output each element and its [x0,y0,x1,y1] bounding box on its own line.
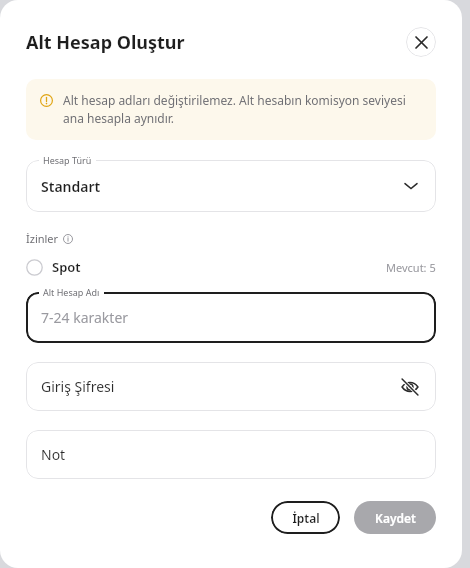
button[interactable]: Not [26,430,436,479]
button[interactable]: Spot [26,258,436,276]
staticText: İptal [292,510,320,526]
button[interactable]: Kaydet [354,501,436,534]
staticText: Giriş Şifresi [41,377,398,396]
button[interactable]: Kapat [406,27,436,57]
staticText: Alt Hesap Adı [43,286,100,298]
button[interactable]: İptal [271,501,340,534]
button[interactable]: Standart [26,160,436,212]
button[interactable]: Giriş Şifresi [26,362,436,411]
staticText: Alt Hesap Oluştur [26,30,406,55]
staticText: İzinler [26,231,59,246]
staticText: Standart [41,177,400,196]
staticText: Mevcut: 5 [386,260,436,275]
button[interactable]: Şifreyi göster [398,375,422,399]
button[interactable]: 7-24 karakter [26,292,436,343]
staticText: Kaydet [375,510,416,526]
staticText: 7-24 karakter [41,308,422,327]
staticText: Not [41,445,422,464]
button[interactable]: Hesap türü seç [400,175,422,197]
staticText: Hesap Türü [43,154,92,166]
staticText: Alt hesap adları değiştirilemez. Alt hes… [63,92,422,127]
staticText: Spot [52,258,386,276]
